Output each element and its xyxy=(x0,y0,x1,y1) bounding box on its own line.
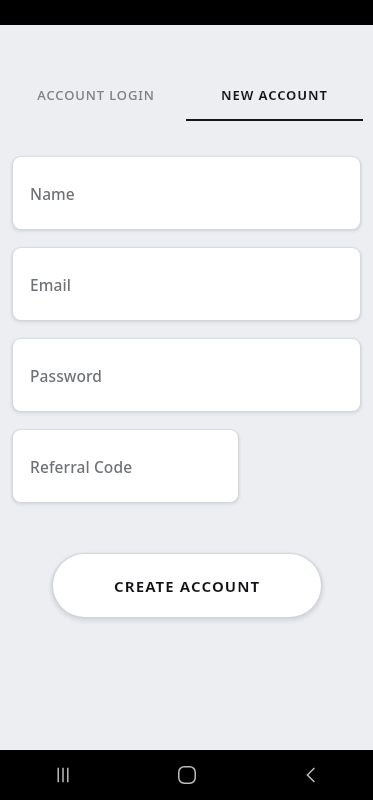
staticText: NEW ACCOUNT xyxy=(221,86,328,104)
button[interactable]: Recent apps xyxy=(0,750,125,800)
button[interactable]: Home xyxy=(125,750,249,800)
button[interactable]: ACCOUNT LOGIN xyxy=(6,72,186,121)
button[interactable]: CREATE ACCOUNT xyxy=(53,554,321,617)
staticText: Referral Code xyxy=(30,456,133,477)
staticText: CREATE ACCOUNT xyxy=(114,576,261,596)
staticText: Email xyxy=(30,274,72,295)
staticText: ACCOUNT LOGIN xyxy=(37,86,155,104)
staticText: Name xyxy=(30,183,75,204)
button[interactable]: Password xyxy=(13,339,360,411)
button[interactable]: Referral Code xyxy=(13,430,238,502)
button[interactable]: Email xyxy=(13,248,360,320)
button[interactable]: NEW ACCOUNT xyxy=(186,72,363,121)
button[interactable]: Name xyxy=(13,157,360,229)
button[interactable]: Back xyxy=(249,750,373,800)
staticText: Password xyxy=(30,365,103,386)
